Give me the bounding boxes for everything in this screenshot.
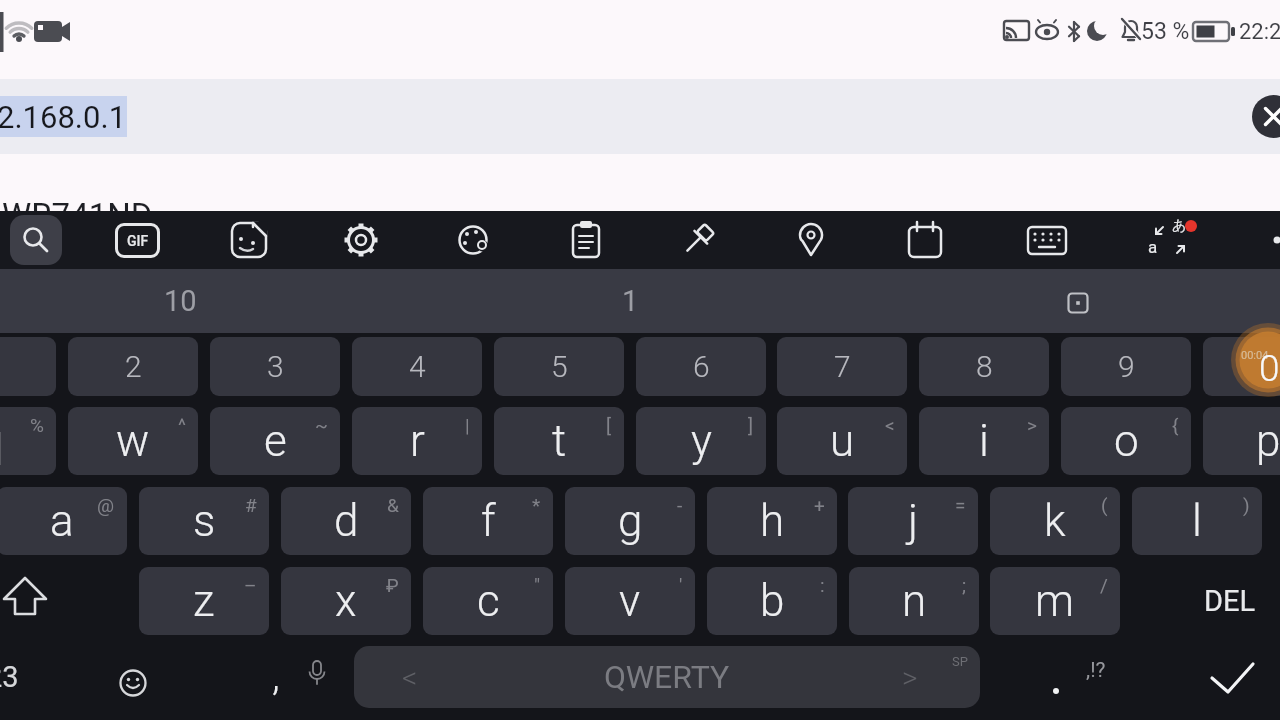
button[interactable]: a xyxy=(1146,216,1194,264)
staticText: 1 xyxy=(622,284,639,318)
button[interactable] xyxy=(225,216,273,264)
button[interactable]: 1 xyxy=(580,269,680,333)
staticText: " xyxy=(534,574,541,596)
staticText: { xyxy=(1172,414,1179,436)
staticText: 53 % xyxy=(1141,18,1190,45)
button[interactable]: , xyxy=(250,646,302,708)
button[interactable]: t xyxy=(494,407,624,475)
staticText: 6 xyxy=(693,349,710,384)
button[interactable] xyxy=(901,216,949,264)
staticText: QWERTY xyxy=(604,658,730,696)
button[interactable]: v xyxy=(565,567,695,635)
staticText: - xyxy=(677,494,683,516)
button[interactable]: c xyxy=(423,567,553,635)
staticText: 2 xyxy=(125,349,142,384)
staticText: 8 xyxy=(976,349,993,384)
button[interactable] xyxy=(337,216,385,264)
staticText: ₽ xyxy=(386,574,399,596)
button[interactable]: i xyxy=(919,407,1049,475)
button[interactable] xyxy=(449,216,497,264)
staticText: 7 xyxy=(834,349,851,384)
button[interactable] xyxy=(1030,646,1082,708)
staticText: a xyxy=(1148,237,1158,257)
staticText: f xyxy=(481,495,496,547)
staticText: : xyxy=(820,574,825,596)
button[interactable]: e xyxy=(210,407,340,475)
button[interactable]: 0 xyxy=(1203,337,1280,396)
button[interactable]: f xyxy=(423,487,553,555)
button[interactable]: 7 xyxy=(777,337,907,396)
button[interactable] xyxy=(103,646,163,708)
button[interactable]: l xyxy=(1132,487,1262,555)
button[interactable] xyxy=(787,216,835,264)
button[interactable]: b xyxy=(707,567,837,635)
staticText: ( xyxy=(1101,494,1108,516)
staticText: = xyxy=(955,494,966,516)
button[interactable]: a xyxy=(0,487,127,555)
staticText: j xyxy=(908,495,919,547)
button[interactable]: 23 xyxy=(0,646,34,708)
button[interactable]: 4 xyxy=(352,337,482,396)
staticText: # xyxy=(245,494,257,516)
staticText: , xyxy=(272,653,280,700)
button[interactable]: p xyxy=(1203,407,1280,475)
button[interactable]: GIF xyxy=(113,216,161,264)
staticText: SP xyxy=(952,654,968,669)
button[interactable]: 6 xyxy=(636,337,766,396)
button[interactable]: < xyxy=(354,646,980,708)
staticText: – xyxy=(244,574,257,596)
button[interactable]: x xyxy=(281,567,411,635)
button[interactable] xyxy=(1190,646,1280,708)
button[interactable]: 8 xyxy=(919,337,1049,396)
button[interactable]: g xyxy=(565,487,695,555)
button[interactable]: r xyxy=(352,407,482,475)
button[interactable] xyxy=(1252,95,1280,138)
staticText: & xyxy=(387,494,399,516)
staticText: s xyxy=(193,495,216,547)
button[interactable]: s xyxy=(139,487,269,555)
staticText: a xyxy=(50,495,74,547)
button[interactable]: o xyxy=(1061,407,1191,475)
button[interactable]: y xyxy=(636,407,766,475)
staticText: h xyxy=(760,495,785,547)
staticText: @ xyxy=(97,494,115,516)
button[interactable] xyxy=(674,216,722,264)
staticText: DEL xyxy=(1204,584,1256,618)
staticText: ~ xyxy=(315,414,328,436)
staticText: % xyxy=(30,414,44,436)
button[interactable] xyxy=(562,216,610,264)
button[interactable]: 1 xyxy=(0,337,56,396)
button[interactable] xyxy=(1023,216,1071,264)
button[interactable]: n xyxy=(849,567,979,635)
staticText: o xyxy=(1114,415,1139,467)
button[interactable] xyxy=(1253,216,1280,264)
button[interactable]: u xyxy=(777,407,907,475)
button[interactable]: j xyxy=(848,487,978,555)
button[interactable]: 9 xyxy=(1061,337,1191,396)
button[interactable]: 3 xyxy=(210,337,340,396)
staticText: x xyxy=(335,575,357,627)
button[interactable]: d xyxy=(281,487,411,555)
button[interactable]: k xyxy=(990,487,1120,555)
button[interactable]: DEL xyxy=(1180,567,1280,635)
staticText: | xyxy=(465,414,470,436)
staticText: 22:25 xyxy=(1239,19,1280,45)
button[interactable]: w xyxy=(68,407,198,475)
button[interactable]: 10 xyxy=(130,269,230,333)
button[interactable]: q xyxy=(0,407,56,475)
button[interactable]: 2 xyxy=(68,337,198,396)
staticText: / xyxy=(1100,574,1108,596)
button[interactable]: 5 xyxy=(494,337,624,396)
button[interactable]: h xyxy=(707,487,837,555)
staticText: b xyxy=(760,575,785,627)
staticText: WR741ND xyxy=(2,196,153,235)
button[interactable]: m xyxy=(990,567,1120,635)
staticText: ) xyxy=(1243,494,1250,516)
staticText: r xyxy=(410,415,425,467)
button[interactable] xyxy=(0,567,64,635)
button[interactable] xyxy=(12,216,60,264)
button[interactable] xyxy=(1054,277,1102,325)
button[interactable]: z xyxy=(139,567,269,635)
staticText: + xyxy=(814,494,825,516)
staticText: t xyxy=(552,415,567,467)
